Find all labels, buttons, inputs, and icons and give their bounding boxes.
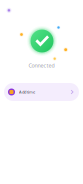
staticText: Connected xyxy=(28,62,54,69)
button[interactable]: Add time xyxy=(4,83,79,101)
staticText: Add time xyxy=(19,89,35,95)
